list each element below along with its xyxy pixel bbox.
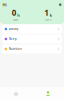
button[interactable]: Nutrition <box>2 44 62 53</box>
staticText: 1 <box>44 7 49 18</box>
staticText: Sleep <box>9 37 17 41</box>
button[interactable]: Activity <box>2 24 62 33</box>
button[interactable]: Home <box>0 87 32 100</box>
staticText: SLEEP <box>13 18 19 21</box>
staticText: Hi <box>2 2 6 7</box>
staticText: k <box>50 13 52 18</box>
staticText: Activity <box>9 27 18 31</box>
staticText: 0 <box>12 7 17 18</box>
button[interactable]: Profile <box>59 3 61 6</box>
staticText: STEPS <box>45 18 51 21</box>
button[interactable]: Sleep <box>2 34 62 43</box>
button[interactable]: Profile <box>32 87 64 100</box>
staticText: Nutrition <box>9 47 22 51</box>
staticText: h <box>17 13 20 18</box>
